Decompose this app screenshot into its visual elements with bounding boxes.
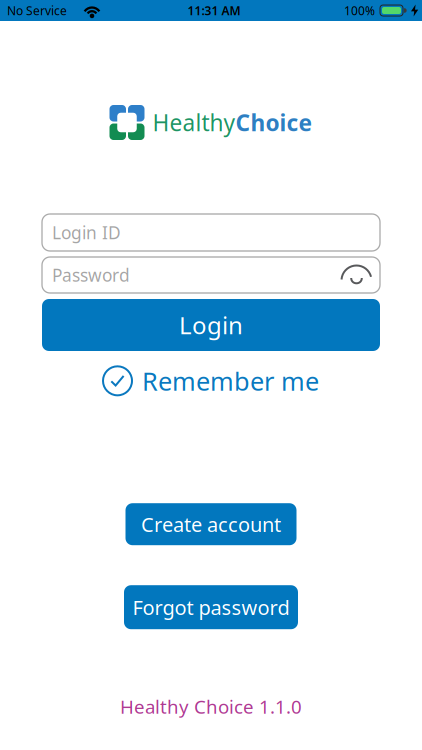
- staticText: No Service: [7, 2, 67, 18]
- staticText: 100%: [344, 2, 375, 18]
- staticText: Login ID: [52, 221, 121, 244]
- staticText: Remember me: [142, 364, 319, 398]
- button[interactable]: Login ID: [42, 214, 380, 251]
- staticText: Healthy Choice 1.1.0: [120, 694, 302, 719]
- staticText: Forgot password: [132, 594, 289, 620]
- button[interactable]: Remember me: [103, 364, 319, 398]
- staticText: Choice: [235, 107, 312, 137]
- button[interactable]: Login: [42, 299, 380, 351]
- staticText: Password: [52, 263, 130, 286]
- staticText: 11:31 AM: [187, 2, 240, 18]
- staticText: Create account: [141, 511, 281, 537]
- button[interactable]: Create account: [125, 503, 296, 545]
- staticText: Login: [179, 309, 243, 341]
- button[interactable]: Forgot password: [124, 585, 298, 629]
- staticText: Healthy: [152, 107, 235, 137]
- button[interactable]: Show password: [341, 265, 380, 284]
- button[interactable]: Password: [42, 257, 380, 293]
